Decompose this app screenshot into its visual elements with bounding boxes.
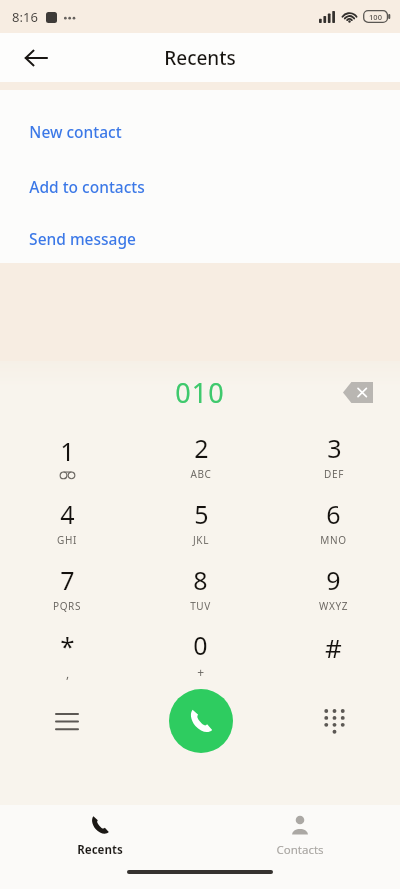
button[interactable]: Recents [0,805,200,867]
button[interactable]: 0 [134,621,267,687]
button[interactable]: Back [16,38,56,78]
button[interactable]: 3 [267,423,400,489]
staticText: Recents [164,45,236,71]
button[interactable]: 6 [267,489,400,555]
button[interactable]: Add to contacts [0,159,400,214]
staticText: DEF [324,467,344,481]
staticText: # [325,630,342,665]
button[interactable]: 4 [0,489,134,555]
staticText: Add to contacts [29,176,145,197]
staticText: 100 [369,12,382,22]
button[interactable]: # [267,621,400,687]
button[interactable]: Call [169,689,233,753]
staticText: Recents [77,842,123,858]
button[interactable]: More options [39,693,95,749]
button[interactable]: 1 [0,423,134,489]
staticText: TUV [190,599,211,613]
staticText: Send message [29,228,136,249]
button[interactable]: 5 [134,489,267,555]
staticText: * [60,628,75,663]
button[interactable]: Send message [0,214,400,263]
staticText: WXYZ [319,599,348,613]
staticText: MNO [320,533,347,547]
staticText: 010 [175,374,225,411]
button[interactable]: 7 [0,555,134,621]
button[interactable]: 8 [134,555,267,621]
staticText: 1 [60,434,75,468]
staticText: Contacts [276,842,324,858]
button[interactable]: Contacts [200,805,400,867]
button[interactable]: Backspace [336,370,380,414]
button[interactable]: 2 [134,423,267,489]
staticText: 6 [326,497,341,531]
staticText: JKL [193,533,209,547]
staticText: 8:16 [12,8,38,26]
button[interactable]: Dialpad [306,693,362,749]
button[interactable]: New contact [0,104,400,159]
staticText: 3 [327,431,342,465]
staticText: GHI [57,533,77,547]
staticText: + [197,664,205,680]
staticText: , [66,665,70,681]
staticText: 5 [194,497,209,531]
staticText: 9 [326,563,341,597]
staticText: 0 [193,628,208,662]
staticText: 2 [194,431,209,465]
staticText: 7 [60,563,75,597]
staticText: ABC [190,467,212,481]
staticText: 4 [60,497,75,531]
staticText: PQRS [53,599,81,613]
button[interactable]: 9 [267,555,400,621]
button[interactable]: * [0,621,134,687]
staticText: 8 [193,563,208,597]
staticText: New contact [29,121,122,142]
